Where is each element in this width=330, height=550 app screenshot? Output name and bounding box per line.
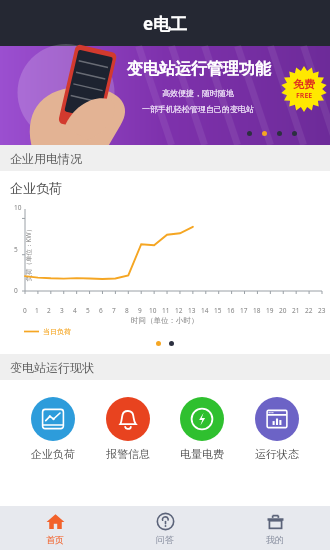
button[interactable]: 运行状态 — [251, 393, 303, 465]
staticText: 负荷（单位：KW） — [23, 225, 32, 281]
staticText: 15 — [214, 306, 222, 315]
staticText: 当日负荷 — [43, 327, 71, 336]
button[interactable]: 首页 — [0, 506, 110, 550]
staticText: FREE — [296, 91, 313, 101]
staticText: 21 — [292, 306, 300, 315]
staticText: 1 — [35, 306, 39, 315]
staticText: 8 — [125, 306, 129, 315]
staticText: 10 — [149, 306, 157, 315]
staticText: 19 — [266, 306, 274, 315]
staticText: 2 — [47, 306, 51, 315]
button[interactable]: 变电站运行管理功能 — [0, 46, 330, 145]
staticText: 变电站运行现状 — [10, 360, 94, 375]
staticText: 5 — [86, 306, 90, 315]
staticText: 11 — [162, 306, 170, 315]
button[interactable]: 企业负荷 — [27, 393, 79, 465]
staticText: 17 — [240, 306, 248, 315]
staticText: 高效便捷，随时随地 — [162, 88, 234, 98]
staticText: 9 — [138, 306, 142, 315]
staticText: 变电站运行管理功能 — [127, 59, 271, 79]
staticText: 16 — [227, 306, 235, 315]
staticText: 5 — [14, 245, 18, 254]
staticText: 企业负荷 — [10, 180, 62, 196]
staticText: 我的 — [266, 534, 284, 545]
staticText: 13 — [188, 306, 196, 315]
button[interactable]: 报警信息 — [102, 393, 154, 465]
staticText: 0 — [23, 306, 27, 315]
staticText: 免费 — [293, 77, 315, 91]
staticText: 12 — [175, 306, 183, 315]
staticText: 企业负荷 — [31, 447, 75, 461]
staticText: 问答 — [156, 534, 174, 545]
staticText: 14 — [201, 306, 209, 315]
staticText: 10 — [14, 203, 22, 212]
staticText: 4 — [73, 306, 77, 315]
staticText: 电量电费 — [180, 447, 224, 461]
button[interactable]: 问答 — [110, 506, 220, 550]
staticText: e电工 — [143, 12, 188, 35]
staticText: 一部手机轻松管理自己的变电站 — [142, 104, 254, 114]
staticText: 6 — [99, 306, 103, 315]
staticText: 企业用电情况 — [10, 151, 82, 166]
staticText: 运行状态 — [255, 447, 299, 461]
staticText: 22 — [305, 306, 313, 315]
staticText: 20 — [279, 306, 287, 315]
staticText: 23 — [318, 306, 326, 315]
staticText: 报警信息 — [106, 447, 150, 461]
button[interactable]: 电量电费 — [176, 393, 228, 465]
staticText: 时间（单位：小时） — [131, 316, 199, 325]
staticText: 18 — [253, 306, 261, 315]
staticText: 0 — [14, 286, 18, 295]
staticText: 7 — [112, 306, 116, 315]
button[interactable]: 我的 — [220, 506, 330, 550]
staticText: 3 — [60, 306, 64, 315]
staticText: 首页 — [46, 534, 64, 545]
